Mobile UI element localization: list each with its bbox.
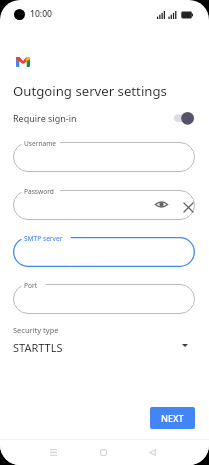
button[interactable]: SMTP server (13, 237, 195, 267)
staticText: NEXT (161, 412, 184, 424)
button[interactable]: Home (91, 439, 115, 465)
button[interactable]: Clear (177, 196, 199, 218)
button[interactable]: Back (140, 439, 164, 465)
button[interactable]: STARTTLS (0, 337, 209, 359)
button[interactable]: Require sign-in (0, 106, 209, 130)
staticText: STARTTLS (13, 340, 63, 355)
staticText: Port (24, 281, 38, 290)
button[interactable]: Security type dropdown (174, 337, 196, 359)
staticText: Password (24, 187, 54, 196)
staticText: Username (24, 139, 57, 148)
button[interactable]: NEXT (150, 407, 195, 429)
staticText: 10:00 (30, 8, 53, 20)
button[interactable]: Recents (41, 439, 65, 465)
staticText: Outgoing server settings (13, 82, 167, 100)
staticText: Require sign-in (13, 112, 77, 124)
staticText: Security type (13, 325, 59, 335)
staticText: SMTP server (24, 234, 63, 243)
button[interactable]: Port (13, 284, 195, 314)
button[interactable]: Show password (150, 193, 172, 215)
button[interactable]: Password (13, 190, 195, 220)
button[interactable]: Username (13, 142, 195, 172)
